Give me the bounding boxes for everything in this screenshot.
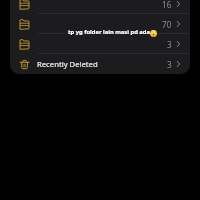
staticText: 70: [162, 19, 172, 30]
staticText: tp yg folder lain masi pd ada: [68, 28, 150, 36]
other: Recently Deleted: [19, 59, 30, 70]
staticText: 3: [167, 39, 172, 50]
button[interactable]: Recently Deleted: [10, 54, 190, 74]
staticText: Recently Deleted: [37, 59, 98, 69]
button[interactable]: Folder: [10, 0, 190, 14]
other: Folder: [19, 19, 30, 30]
button[interactable]: Folder: [10, 34, 190, 54]
other: Folder: [19, 0, 30, 10]
button[interactable]: Folder: [10, 14, 190, 34]
staticText: 3: [167, 59, 172, 70]
other: Folder: [19, 39, 30, 50]
staticText: 16: [162, 0, 172, 10]
